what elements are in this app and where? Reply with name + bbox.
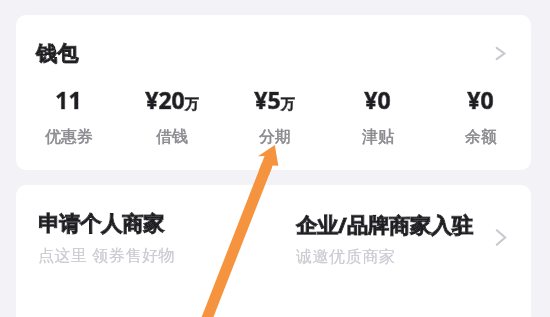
staticText: 优惠券 <box>45 127 93 147</box>
button[interactable]: 申请个人商家 <box>16 185 274 317</box>
staticText: 余额 <box>465 127 497 147</box>
staticText: 津贴 <box>362 127 394 147</box>
staticText: 余额 <box>465 127 497 147</box>
other: Open <box>495 228 507 247</box>
other: More <box>495 46 506 61</box>
staticText: ¥0 <box>467 84 494 115</box>
staticText: ¥0 <box>364 84 391 115</box>
staticText: ¥5万 <box>254 84 295 115</box>
staticText: ¥20万 <box>145 84 199 115</box>
button[interactable]: ¥5万 <box>223 84 326 147</box>
staticText: 钱包 <box>36 41 78 67</box>
staticText: ¥20万 <box>145 84 199 115</box>
staticText: 申请个人商家 <box>38 211 164 237</box>
staticText: 点这里 领券售好物 <box>38 244 176 266</box>
staticText: 11 <box>55 84 82 115</box>
staticText: 优惠券 <box>45 127 93 147</box>
button[interactable]: 11 <box>17 84 120 147</box>
button[interactable]: 企业/品牌商家入驻 <box>274 185 531 317</box>
staticText: 分期 <box>259 127 291 147</box>
button[interactable]: ¥0 <box>326 84 429 147</box>
staticText: 分期 <box>259 127 291 147</box>
staticText: 借钱 <box>156 127 188 147</box>
staticText: ¥5万 <box>254 84 295 115</box>
staticText: 企业/品牌商家入驻 <box>296 211 473 240</box>
staticText: 诚邀优质商家 <box>296 247 396 267</box>
button[interactable]: 钱包 <box>16 15 531 170</box>
button[interactable]: ¥0 <box>429 84 531 147</box>
button[interactable]: ¥20万 <box>120 84 223 147</box>
staticText: 借钱 <box>156 127 188 147</box>
staticText: 企业/品牌商家入驻 <box>296 211 473 240</box>
staticText: 津贴 <box>362 127 394 147</box>
staticText: 申请个人商家 <box>38 211 164 237</box>
staticText: 钱包 <box>36 41 78 67</box>
staticText: ¥0 <box>467 84 494 115</box>
staticText: ¥0 <box>364 84 391 115</box>
staticText: 11 <box>55 84 82 115</box>
